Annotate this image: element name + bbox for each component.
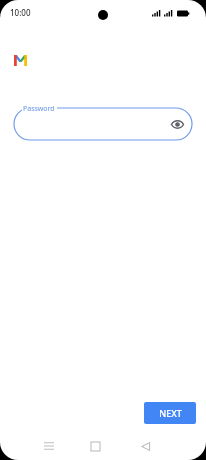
button[interactable]: Back (132, 433, 158, 459)
staticText: 10:00 (10, 7, 31, 18)
button[interactable]: Password (14, 108, 192, 140)
button[interactable]: Home (82, 433, 108, 459)
button[interactable]: Show password (167, 114, 187, 134)
button[interactable]: Recents (36, 433, 62, 459)
button[interactable]: NEXT (144, 402, 196, 424)
staticText: NEXT (159, 407, 182, 419)
staticText: Password (23, 104, 55, 114)
other: Gmail (14, 55, 27, 66)
